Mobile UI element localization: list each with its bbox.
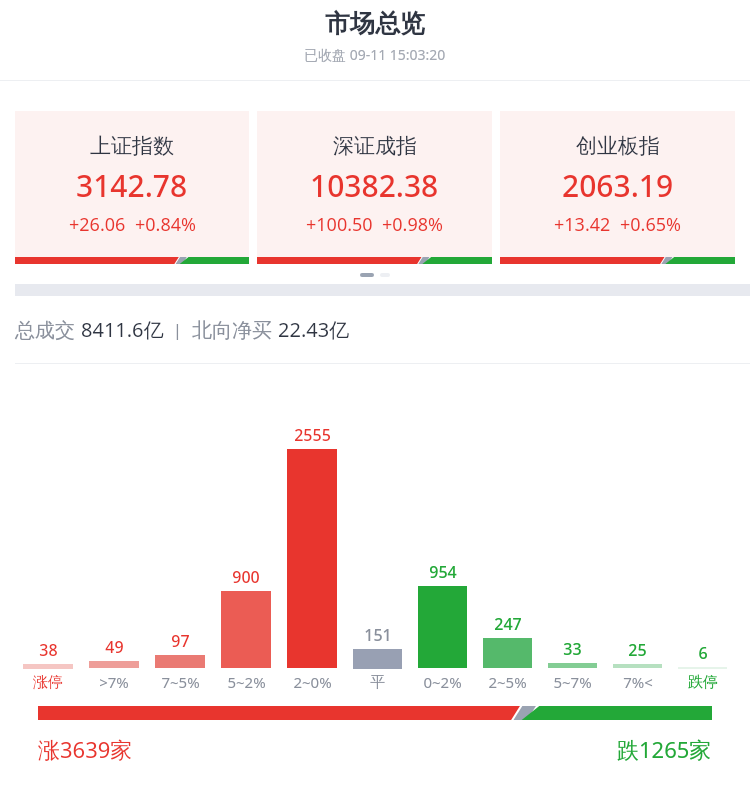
staticText: 深证成指 xyxy=(333,133,417,159)
staticText: +100.50 xyxy=(306,212,373,237)
staticText: 平 xyxy=(370,673,385,692)
button[interactable]: 97 xyxy=(147,630,213,692)
staticText: 900 xyxy=(232,566,260,588)
button[interactable]: 25 xyxy=(605,639,670,692)
staticText: +26.06 xyxy=(69,212,126,237)
staticText: 涨停 xyxy=(33,673,63,692)
staticText: 25 xyxy=(628,639,647,661)
staticText: 2~5% xyxy=(488,672,527,692)
staticText: 247 xyxy=(494,613,522,635)
button[interactable]: 33 xyxy=(540,638,605,692)
button[interactable] xyxy=(38,706,712,720)
staticText: 954 xyxy=(429,561,457,583)
staticText: 151 xyxy=(364,624,392,646)
button[interactable]: 总成交 xyxy=(0,296,750,363)
staticText: 7~5% xyxy=(161,672,200,692)
staticText: +13.42 xyxy=(554,212,611,237)
staticText: 市场总览 xyxy=(325,8,425,39)
staticText: 3142.78 xyxy=(76,165,188,206)
staticText: 10382.38 xyxy=(310,165,439,206)
staticText: +0.65% xyxy=(620,212,681,237)
staticText: 已收盘 09-11 15:03:20 xyxy=(304,45,446,64)
button[interactable]: 247 xyxy=(475,613,540,692)
button[interactable]: 2555 xyxy=(279,424,345,692)
staticText: 总成交 xyxy=(15,316,81,343)
staticText: 22.43亿 xyxy=(278,316,350,343)
staticText: 涨3639家 xyxy=(38,734,133,764)
staticText: +0.98% xyxy=(382,212,443,237)
staticText: 49 xyxy=(105,636,124,658)
staticText: 创业板指 xyxy=(576,133,660,159)
button[interactable]: 49 xyxy=(81,636,147,692)
staticText: 2555 xyxy=(294,424,331,446)
staticText: +0.84% xyxy=(135,212,196,237)
staticText: 跌1265家 xyxy=(617,734,712,764)
staticText: 6 xyxy=(698,642,708,664)
staticText: 97 xyxy=(171,630,190,652)
staticText: 5~7% xyxy=(553,672,592,692)
staticText: 38 xyxy=(39,639,58,661)
staticText: 7%< xyxy=(623,672,653,692)
staticText: 0~2% xyxy=(423,672,462,692)
button[interactable]: 954 xyxy=(410,561,475,692)
button[interactable]: 6 xyxy=(670,642,735,692)
staticText: 上证指数 xyxy=(90,133,174,159)
button[interactable]: 900 xyxy=(213,566,279,692)
staticText: 33 xyxy=(563,638,582,660)
staticText: 2063.19 xyxy=(562,165,674,206)
button[interactable]: 151 xyxy=(345,624,410,692)
button[interactable]: 创业板指 xyxy=(500,111,735,264)
button[interactable]: 上证指数 xyxy=(15,111,249,264)
staticText: | xyxy=(164,318,192,341)
staticText: 5~2% xyxy=(227,672,266,692)
staticText: 跌停 xyxy=(688,673,718,692)
staticText: 8411.6亿 xyxy=(81,316,164,343)
staticText: >7% xyxy=(99,672,129,692)
staticText: 北向净买 xyxy=(192,316,278,343)
button[interactable]: 38 xyxy=(15,639,81,692)
button[interactable]: 深证成指 xyxy=(257,111,492,264)
staticText: 2~0% xyxy=(293,672,332,692)
